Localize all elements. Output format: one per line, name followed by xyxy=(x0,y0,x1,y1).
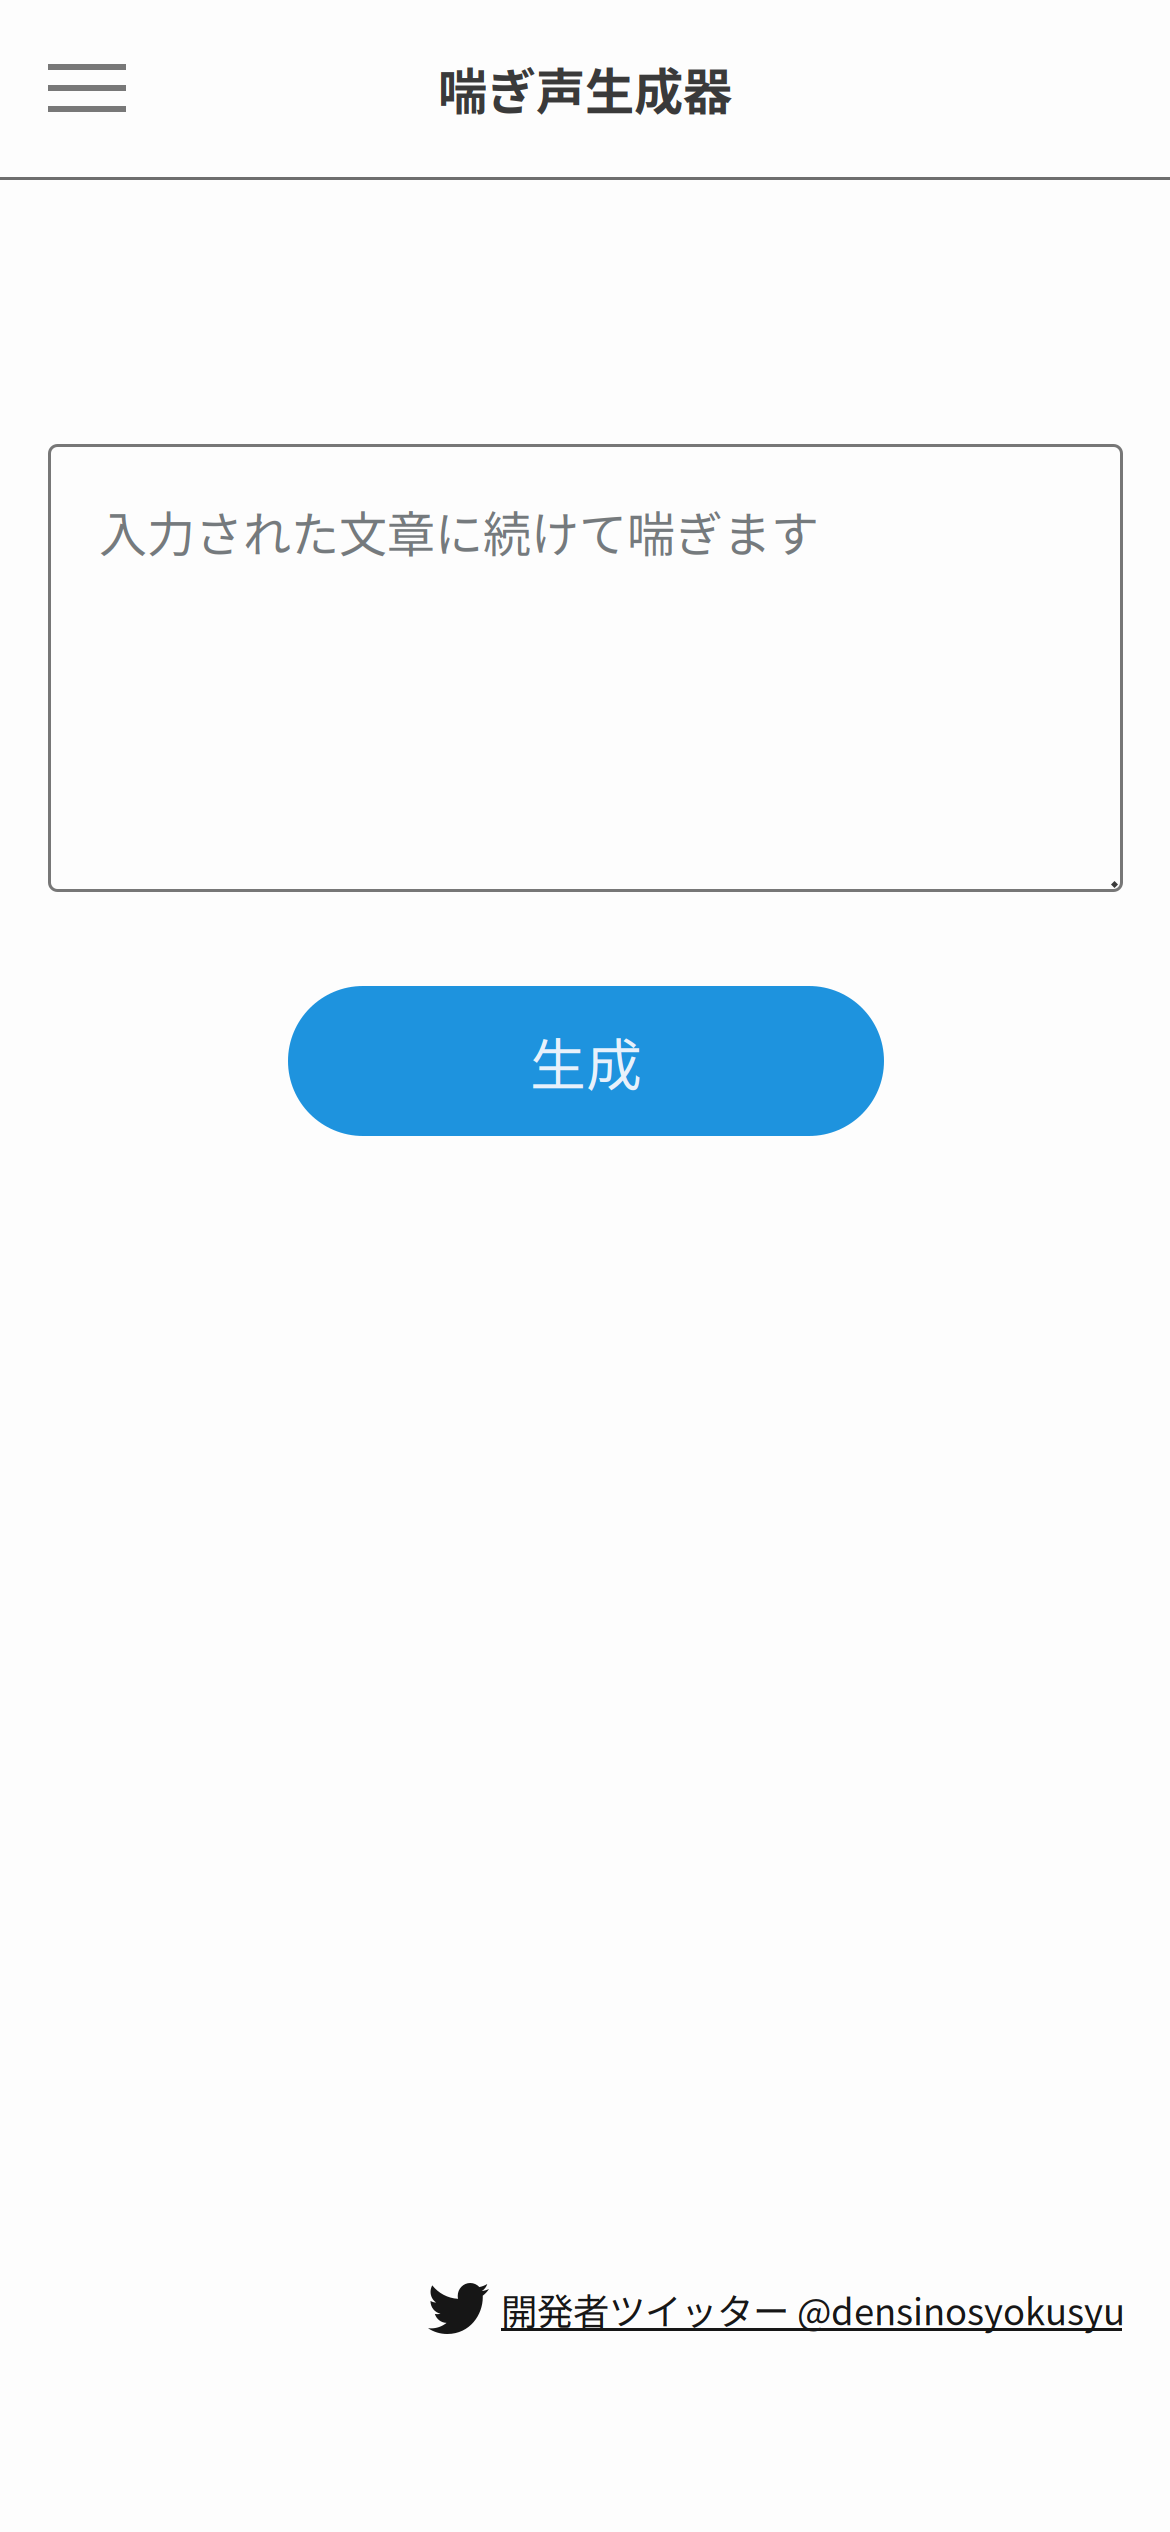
staticText: 生成 xyxy=(530,1021,642,1101)
staticText: 入力された文章に続けて喘ぎます xyxy=(99,496,819,565)
staticText: 喘ぎ声生成器 xyxy=(438,52,732,124)
button[interactable]: Menu xyxy=(32,33,142,143)
button[interactable]: 生成 xyxy=(288,986,884,1136)
staticText: 開発者ツイッター @densinosyokusyu xyxy=(501,2283,1125,2336)
button[interactable]: 開発者ツイッター @densinosyokusyu xyxy=(428,2283,1122,2334)
